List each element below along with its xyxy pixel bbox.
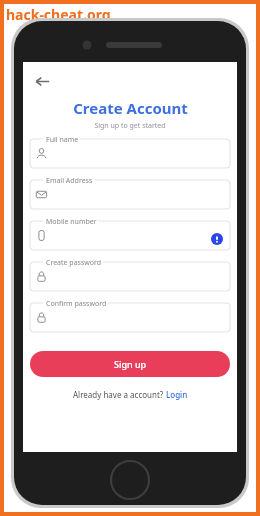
button[interactable]: Mobile number	[30, 221, 230, 250]
staticText: Email Address	[46, 176, 93, 186]
staticText: Already have a account?	[73, 389, 166, 400]
staticText: Mobile number	[46, 217, 97, 227]
button[interactable]: Information	[211, 233, 223, 245]
button[interactable]: Confirm password	[30, 303, 230, 332]
button[interactable]: Already have a account?	[73, 389, 188, 400]
staticText: hack-cheat.org	[6, 5, 111, 24]
staticText: Create password	[46, 258, 102, 268]
staticText: Confirm password	[46, 299, 107, 309]
staticText: Login	[166, 389, 188, 400]
staticText: Full name	[46, 135, 79, 145]
button[interactable]: Sign up	[30, 351, 230, 377]
staticText: Create Account	[73, 98, 188, 118]
button[interactable]: Create password	[30, 262, 230, 291]
button[interactable]: Email Address	[30, 180, 230, 209]
staticText: Sign up	[114, 358, 147, 370]
staticText: Sign up to get started	[94, 121, 166, 131]
button[interactable]: Back	[29, 68, 55, 94]
button[interactable]: Full name	[30, 139, 230, 168]
